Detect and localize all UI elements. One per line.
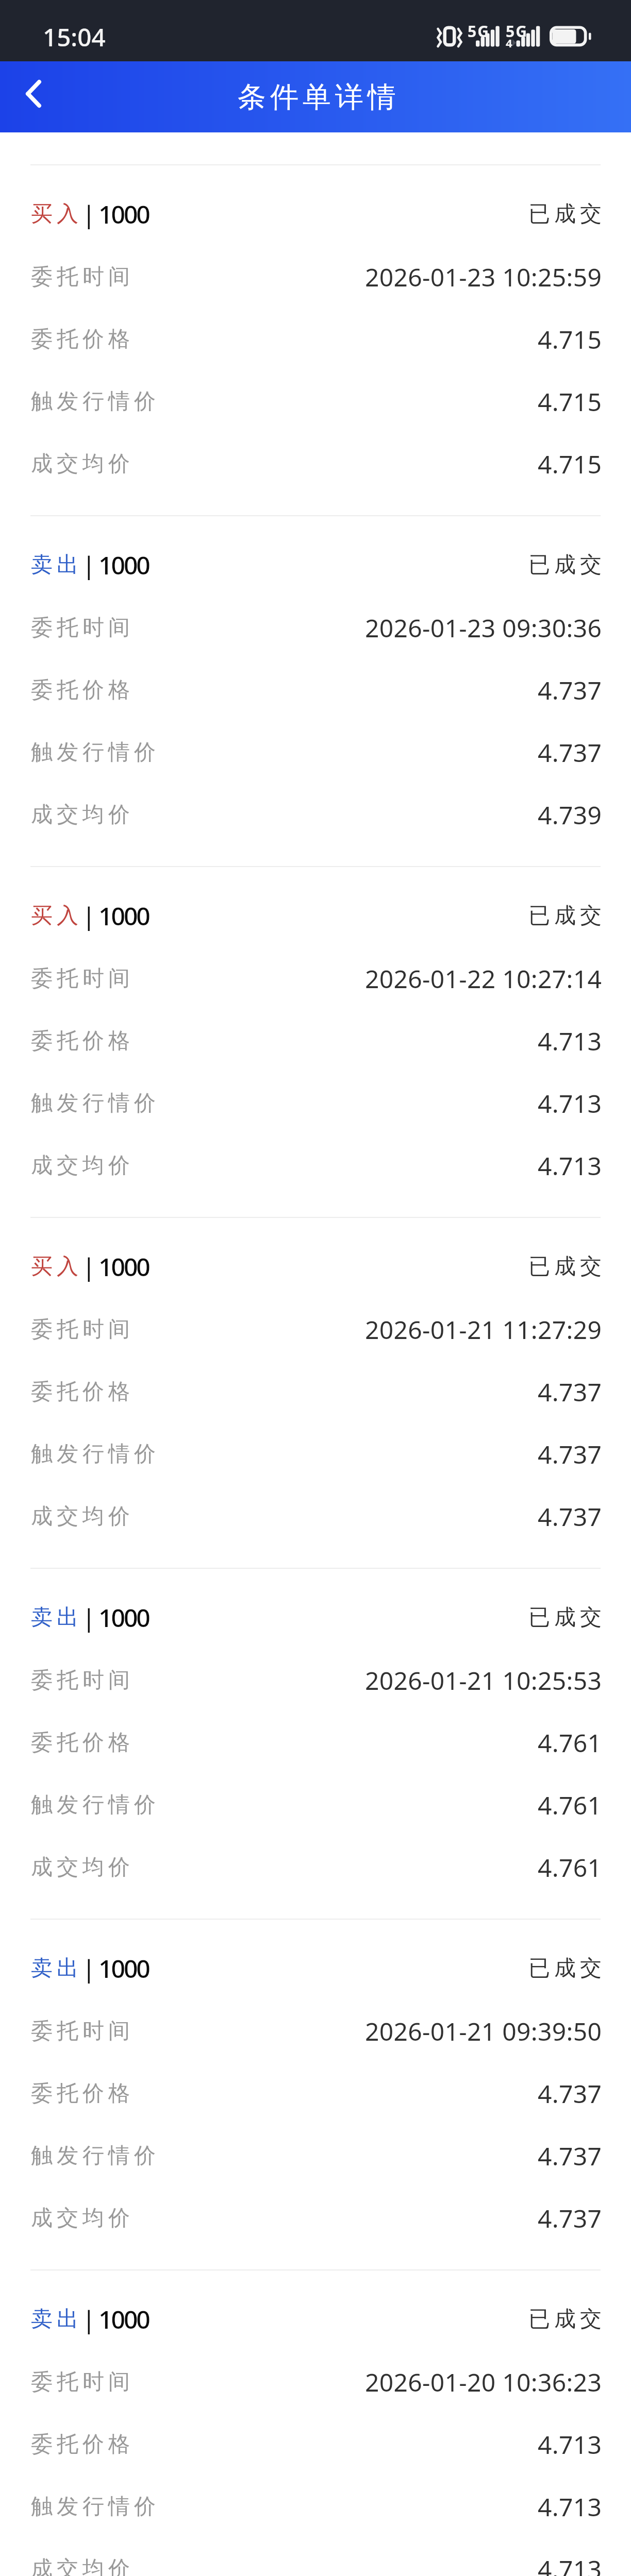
staticText: 1000 [98,1952,149,1985]
staticText: 2026-01-21 10:25:53 [365,1664,602,1697]
button[interactable]: 返回 [0,61,65,132]
staticText: 1000 [98,1601,149,1634]
staticText: 条件单详情 [236,79,398,115]
staticText: 成交均价 [29,1503,132,1530]
staticText: 4.713 [538,1149,602,1182]
staticText: | [82,1601,96,1634]
button[interactable]: 买入 [0,866,631,1217]
staticText: 2026-01-20 10:36:23 [365,2365,602,2399]
staticText: 委托价格 [29,326,132,353]
staticText: 委托时间 [29,263,132,291]
staticText: 4.737 [538,1375,602,1409]
staticText: 4.713 [538,2552,602,2576]
staticText: 触发行情价 [29,1791,158,1819]
staticText: | [82,197,96,231]
staticText: 买入 [29,200,80,228]
staticText: 4.713 [538,2490,602,2523]
staticText: 4.713 [538,1024,602,1058]
staticText: 委托价格 [29,676,132,704]
staticText: 1000 [98,197,149,231]
staticText: 已成交 [526,551,604,579]
staticText: 触发行情价 [29,2142,158,2170]
staticText: 2026-01-23 10:25:59 [365,260,602,294]
staticText: 卖出 [29,1604,80,1631]
staticText: 成交均价 [29,450,132,478]
staticText: 1000 [98,2302,149,2336]
staticText: 成交均价 [29,1854,132,1881]
staticText: 2026-01-22 10:27:14 [365,962,602,995]
staticText: 委托价格 [29,2080,132,2107]
staticText: 4.715 [538,323,602,356]
staticText: 4.737 [538,1437,602,1471]
staticText: 4.737 [538,2077,602,2110]
staticText: 已成交 [526,902,604,929]
staticText: 触发行情价 [29,388,158,415]
staticText: 4.737 [538,736,602,769]
staticText: | [82,548,96,582]
staticText: 5G [506,21,528,42]
staticText: 4.761 [538,1788,602,1822]
staticText: 已成交 [526,1604,604,1631]
staticText: | [82,2302,96,2336]
staticText: 委托时间 [29,614,132,641]
staticText: 已成交 [526,2306,604,2333]
staticText: 委托价格 [29,1027,132,1055]
staticText: 触发行情价 [29,1440,158,1468]
staticText: 已成交 [526,1955,604,1982]
staticText: 4 [506,35,512,50]
staticText: 委托时间 [29,1316,132,1343]
staticText: 买入 [29,1253,80,1280]
staticText: 5G [468,21,490,42]
staticText: 委托价格 [29,2431,132,2458]
staticText: 触发行情价 [29,2493,158,2520]
button[interactable]: 买入 [0,164,631,515]
staticText: 4.761 [538,1726,602,1759]
button[interactable]: 卖出 [0,1568,631,1919]
staticText: 已成交 [526,200,604,228]
staticText: 成交均价 [29,2205,132,2232]
staticText: 4.737 [538,673,602,707]
button[interactable]: 买入 [0,1217,631,1568]
staticText: | [82,1952,96,1985]
staticText: 4.715 [538,447,602,481]
staticText: 4.737 [538,2139,602,2173]
staticText: 4.713 [538,2428,602,2461]
staticText: 委托时间 [29,2368,132,2396]
button[interactable]: 卖出 [0,1919,631,2269]
staticText: 1000 [98,899,149,933]
staticText: 1000 [98,1250,149,1283]
staticText: 成交均价 [29,2555,132,2576]
staticText: 成交均价 [29,1152,132,1179]
staticText: 触发行情价 [29,739,158,766]
staticText: | [82,1250,96,1283]
staticText: 4.761 [538,1851,602,1884]
staticText: 卖出 [29,1955,80,1982]
button[interactable]: 卖出 [0,2269,631,2576]
staticText: 4.739 [538,798,602,832]
staticText: 1000 [98,548,149,582]
staticText: 4.713 [538,1087,602,1120]
staticText: 4.737 [538,1500,602,1533]
staticText: 委托时间 [29,1667,132,1694]
staticText: 2026-01-21 09:39:50 [365,2014,602,2048]
staticText: 委托时间 [29,2018,132,2045]
staticText: 委托价格 [29,1729,132,1756]
staticText: 委托时间 [29,965,132,992]
staticText: 2026-01-23 09:30:36 [365,611,602,645]
staticText: 4.737 [538,2201,602,2235]
button[interactable]: 卖出 [0,515,631,866]
staticText: 卖出 [29,2306,80,2333]
staticText: 2026-01-21 11:27:29 [365,1313,602,1346]
staticText: 买入 [29,902,80,929]
staticText: 15:04 [43,20,106,54]
staticText: 委托价格 [29,1378,132,1405]
staticText: 触发行情价 [29,1090,158,1117]
staticText: 卖出 [29,551,80,579]
staticText: 成交均价 [29,801,132,828]
staticText: 4.715 [538,385,602,418]
staticText: 已成交 [526,1253,604,1280]
staticText: | [82,899,96,933]
